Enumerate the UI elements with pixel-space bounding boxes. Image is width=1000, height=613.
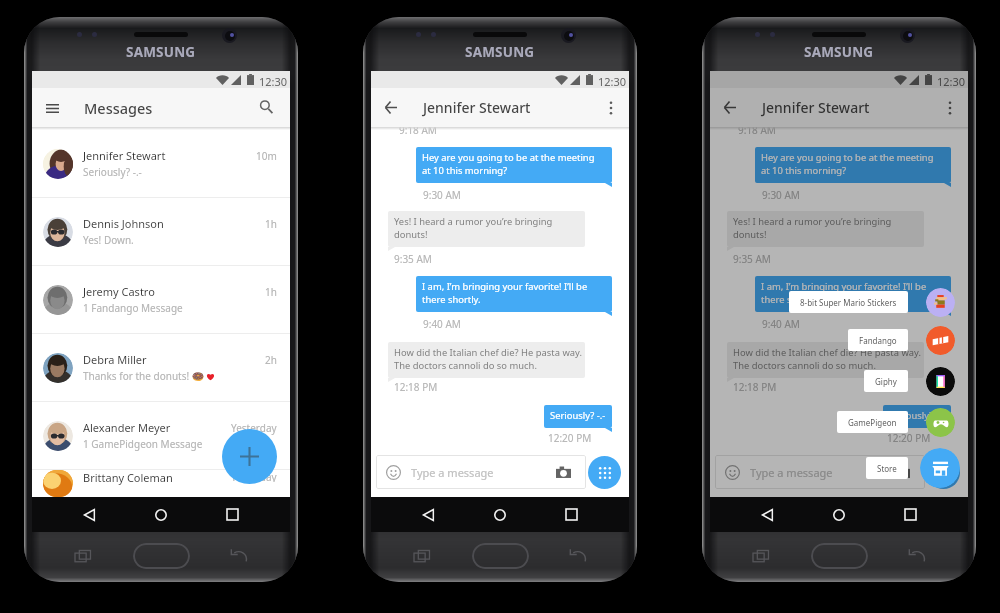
staticText: Alexander Meyer <box>83 420 171 435</box>
button[interactable]: Jennifer Stewart <box>32 130 290 197</box>
staticText: Jeremy Castro <box>83 284 155 299</box>
staticText: 12:30 <box>937 74 966 89</box>
staticText: SAMSUNG <box>465 43 535 61</box>
staticText: Yes! I heard a rumor you’re bringing <box>394 215 553 228</box>
button[interactable]: Back <box>757 504 778 525</box>
staticText: Type a message <box>750 465 833 480</box>
button[interactable]: Camera <box>892 462 912 482</box>
staticText: Fandango <box>859 335 897 346</box>
button[interactable]: Back <box>716 94 743 121</box>
staticText: 2h <box>265 353 277 367</box>
button[interactable]: GamePigeon <box>926 408 955 437</box>
staticText: 12:20 PM <box>887 431 931 445</box>
staticText: there shortly. <box>422 293 481 306</box>
button[interactable]: Giphy <box>926 367 955 396</box>
button[interactable]: Back <box>418 504 439 525</box>
staticText: 9:18 AM <box>738 123 776 137</box>
button[interactable]: Type a message <box>376 455 586 489</box>
button[interactable]: I am, I’m bringing your favorite! I’ll b… <box>755 276 951 312</box>
staticText: SAMSUNG <box>804 43 874 61</box>
button[interactable]: Seriously? -.- <box>544 405 612 428</box>
staticText: Hey are you going to be at the meeting <box>422 151 595 164</box>
staticText: donuts! <box>733 228 767 241</box>
staticText: Yesterday <box>231 470 277 482</box>
staticText: 12:30 <box>598 74 627 89</box>
button[interactable]: GamePigeon <box>837 411 908 433</box>
button[interactable]: Store <box>920 448 960 488</box>
staticText: 8-bit Super Mario Stickers <box>800 297 897 308</box>
button[interactable]: Recents <box>222 504 243 525</box>
button[interactable]: Menu <box>39 95 65 121</box>
button[interactable]: Home button <box>811 543 868 569</box>
button[interactable]: Fandango <box>926 326 955 355</box>
staticText: Brittany Coleman <box>83 470 173 485</box>
staticText: 1 GamePidgeon Message <box>83 437 203 451</box>
button[interactable]: Home <box>150 504 171 525</box>
staticText: 1 Fandango Message <box>83 301 183 315</box>
staticText: How did the Italian chef die? He pasta w… <box>733 346 922 359</box>
button[interactable]: Yes! I heard a rumor you’re bringing <box>388 211 585 247</box>
button[interactable]: How did the Italian chef die? He pasta w… <box>727 342 924 378</box>
button[interactable]: Home <box>828 504 849 525</box>
button[interactable]: Camera <box>553 462 573 482</box>
button[interactable]: Seriously? -.- <box>883 405 951 428</box>
button[interactable]: Yes! I heard a rumor you’re bringing <box>727 211 924 247</box>
staticText: Messages <box>84 98 153 118</box>
button[interactable]: Search <box>253 94 279 120</box>
staticText: 12:30 <box>259 74 288 89</box>
staticText: Jennifer Stewart <box>83 148 166 163</box>
button[interactable]: Store <box>866 457 908 479</box>
button[interactable]: Debra Miller <box>32 334 290 401</box>
button[interactable]: Recents <box>561 504 582 525</box>
staticText: 9:18 AM <box>399 123 437 137</box>
button[interactable]: Home button <box>133 543 190 569</box>
staticText: donuts! <box>394 228 428 241</box>
staticText: 1h <box>265 285 277 299</box>
button[interactable]: Type a message <box>715 455 925 489</box>
button[interactable]: Home button <box>472 543 529 569</box>
button[interactable]: 8-bit Super Mario Stickers <box>926 288 955 317</box>
button[interactable]: 8-bit Super Mario Stickers <box>789 291 908 313</box>
staticText: 9:35 AM <box>733 252 771 266</box>
button[interactable]: More options <box>597 94 624 121</box>
button[interactable]: New message <box>222 429 277 484</box>
staticText: Seriously? -.- <box>889 409 945 422</box>
button[interactable]: Back <box>79 504 100 525</box>
button[interactable]: Hey are you going to be at the meeting <box>416 147 612 183</box>
button[interactable]: Brittany Coleman <box>32 470 290 497</box>
staticText: there shortly. <box>761 293 820 306</box>
staticText: Dennis Johnson <box>83 216 164 231</box>
staticText: Yes! I heard a rumor you’re bringing <box>733 215 892 228</box>
staticText: The doctors cannoli do so much. <box>733 359 876 372</box>
button[interactable]: I am, I’m bringing your favorite! I’ll b… <box>416 276 612 312</box>
button[interactable]: More options <box>936 94 963 121</box>
button[interactable]: Back <box>377 94 404 121</box>
staticText: Jennifer Stewart <box>762 98 870 117</box>
staticText: Debra Miller <box>83 352 147 367</box>
staticText: I am, I’m bringing your favorite! I’ll b… <box>761 280 927 293</box>
button[interactable]: Apps <box>927 456 960 489</box>
button[interactable]: How did the Italian chef die? He pasta w… <box>388 342 585 378</box>
staticText: Thanks for the donuts! 🍩 <box>83 369 205 383</box>
button[interactable]: Recents <box>900 504 921 525</box>
button[interactable]: Giphy <box>864 370 908 392</box>
staticText: 12:20 PM <box>548 431 592 445</box>
button[interactable]: Dennis Johnson <box>32 198 290 265</box>
staticText: 9:40 AM <box>762 317 800 331</box>
staticText: 12:18 PM <box>394 380 438 394</box>
button[interactable]: Hey are you going to be at the meeting <box>755 147 951 183</box>
button[interactable]: Jeremy Castro <box>32 266 290 333</box>
staticText: Seriously? -.- <box>83 165 142 179</box>
button[interactable]: Alexander Meyer <box>32 402 290 469</box>
staticText: 9:35 AM <box>394 252 432 266</box>
staticText: at 10 this morning? <box>422 164 508 177</box>
staticText: GamePigeon <box>848 417 897 428</box>
staticText: Type a message <box>411 465 494 480</box>
staticText: 9:40 AM <box>423 317 461 331</box>
button[interactable]: Fandango <box>848 329 908 351</box>
staticText: Yesterday <box>231 421 277 435</box>
staticText: Yes! Down. <box>83 233 134 247</box>
staticText: Giphy <box>875 376 897 387</box>
button[interactable]: Home <box>489 504 510 525</box>
button[interactable]: Apps <box>588 456 621 489</box>
